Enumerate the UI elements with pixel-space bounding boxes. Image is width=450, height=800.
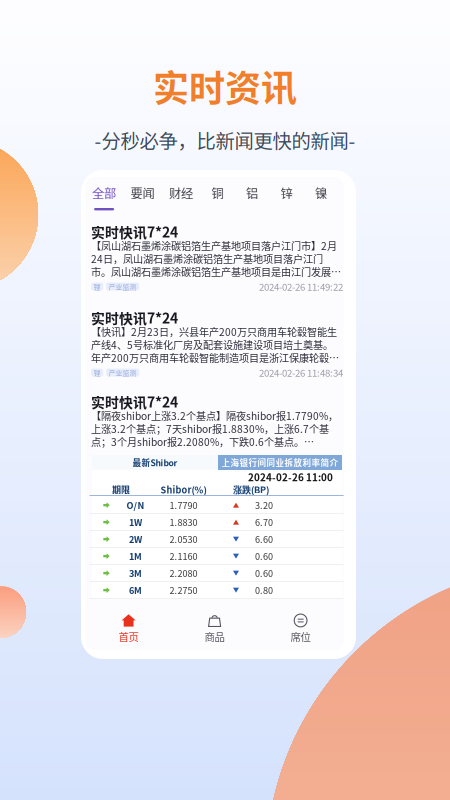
staticText: 0.80 [255,584,273,597]
staticText: 年产200万只商用车轮毂智能制造项目是浙江保康轮毂… [91,350,339,365]
button[interactable]: 全部 [92,186,116,210]
staticText: 3M [129,567,142,580]
staticText: 【隔夜shibor上涨3.2个基点】隔夜shibor报1.7790%， [91,408,338,423]
button[interactable]: 铝 [242,186,262,210]
staticText: -分秒必争，比新闻更快的新闻- [94,126,355,154]
button[interactable]: 商品 [172,614,258,644]
staticText: 2.2080 [169,567,197,580]
staticText: 要闻 [131,184,155,202]
staticText: 0.60 [255,550,273,563]
staticText: 锂 [94,367,101,377]
staticText: 最新Shibor [132,456,177,469]
staticText: 1W [129,516,142,529]
staticText: 产线4、5号标准化厂房及配套设施建设项目培土奠基。 [91,337,333,352]
staticText: 财经 [169,184,193,202]
staticText: 1M [129,550,142,563]
staticText: 6.70 [255,516,273,529]
staticText: O/N [126,499,144,512]
staticText: 2W [129,533,142,546]
staticText: 1.8830 [169,516,197,529]
staticText: 期限 [112,483,130,496]
staticText: 锌 [281,184,293,202]
staticText: 席位 [291,629,311,644]
staticText: 实时快讯7*24 [91,221,178,242]
staticText: 1.7790 [169,499,197,512]
staticText: 产业监测 [109,367,137,377]
staticText: 2.0530 [169,533,197,546]
staticText: 上海银行间同业拆放利率简介 [221,456,338,469]
staticText: 【快讯】2月23日，兴县年产200万只商用车轮毂智能生 [91,324,337,339]
staticText: 0.60 [255,567,273,580]
staticText: 全部 [92,184,116,202]
staticText: 涨跌(BP) [233,483,269,496]
staticText: 实时快讯7*24 [91,307,178,328]
button[interactable]: 首页 [86,614,172,644]
button[interactable]: 锌 [277,186,297,210]
staticText: 铝 [246,184,258,202]
staticText: 2024-02-26 11:48:34 [259,365,343,379]
button[interactable]: 财经 [169,186,193,210]
staticText: 商品 [205,629,225,644]
staticText: 2024-02-26 11:49:22 [259,279,343,293]
button[interactable]: 镍 [311,186,331,210]
staticText: 6M [129,584,142,597]
staticText: 铜 [212,184,224,202]
button[interactable]: 实时快讯7*24 [86,309,344,393]
staticText: 首页 [119,629,139,644]
button[interactable]: 实时快讯7*24 [86,223,344,309]
staticText: 【凤山湖石墨烯涂碳铝箔生产基地项目落户江门市】2月 [91,238,337,253]
staticText: 实时快讯7*24 [91,391,178,412]
staticText: 3.20 [255,499,273,512]
staticText: 2024-02-26 11:00 [248,470,333,484]
staticText: 市。凤山湖石墨烯涂碳铝箔生产基地项目是由江门发展… [91,264,341,279]
button[interactable]: 铜 [208,186,228,210]
staticText: 点；3个月shibor报2.2080%，下跌0.6个基点。… [91,434,314,449]
staticText: 24日，凤山湖石墨烯涂碳铝箔生产基地项目落户江门 [91,251,323,266]
staticText: 上涨3.2个基点；7天shibor报1.8830%，上涨6.7个基 [91,421,329,436]
button[interactable]: 要闻 [131,186,155,210]
staticText: 实时资讯 [153,60,297,112]
staticText: 产业监测 [109,281,137,291]
button[interactable]: 席位 [258,614,344,644]
staticText: Shibor(%) [160,483,206,496]
staticText: 镍 [315,184,327,202]
staticText: 2.1160 [169,550,197,563]
button[interactable]: 实时快讯7*24 [86,393,344,455]
staticText: 6.60 [255,533,273,546]
staticText: 2.2750 [169,584,197,597]
staticText: 锂 [94,281,101,291]
